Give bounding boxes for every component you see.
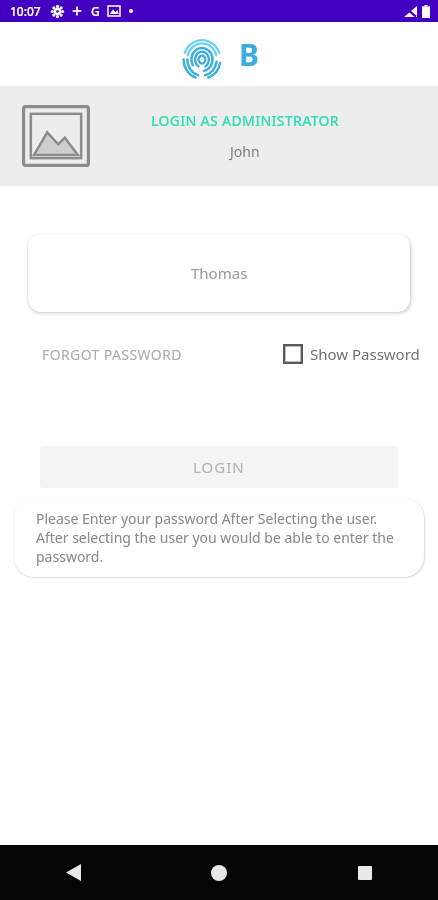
staticText: LOGIN bbox=[193, 457, 245, 477]
button[interactable]: Thomas bbox=[28, 234, 410, 312]
staticText: B bbox=[239, 34, 259, 75]
staticText: Please Enter your password After Selecti… bbox=[36, 509, 402, 566]
staticText: LOGIN AS ADMINISTRATOR bbox=[151, 111, 339, 130]
button[interactable]: LOGIN bbox=[40, 446, 398, 488]
staticText: FORGOT PASSWORD bbox=[42, 345, 182, 364]
button[interactable]: LOGIN AS ADMINISTRATOR bbox=[0, 86, 438, 186]
staticText: 10:07 bbox=[10, 3, 41, 19]
button[interactable]: FORGOT PASSWORD bbox=[42, 341, 182, 368]
button[interactable]: Back bbox=[0, 845, 146, 900]
staticText: John bbox=[230, 142, 260, 161]
staticText: Show Password bbox=[310, 344, 420, 364]
button[interactable]: Home bbox=[146, 845, 292, 900]
staticText: G bbox=[91, 3, 100, 19]
button[interactable]: Recent apps bbox=[292, 845, 438, 900]
staticText: Thomas bbox=[191, 263, 248, 283]
button[interactable]: Show Password bbox=[283, 340, 420, 368]
